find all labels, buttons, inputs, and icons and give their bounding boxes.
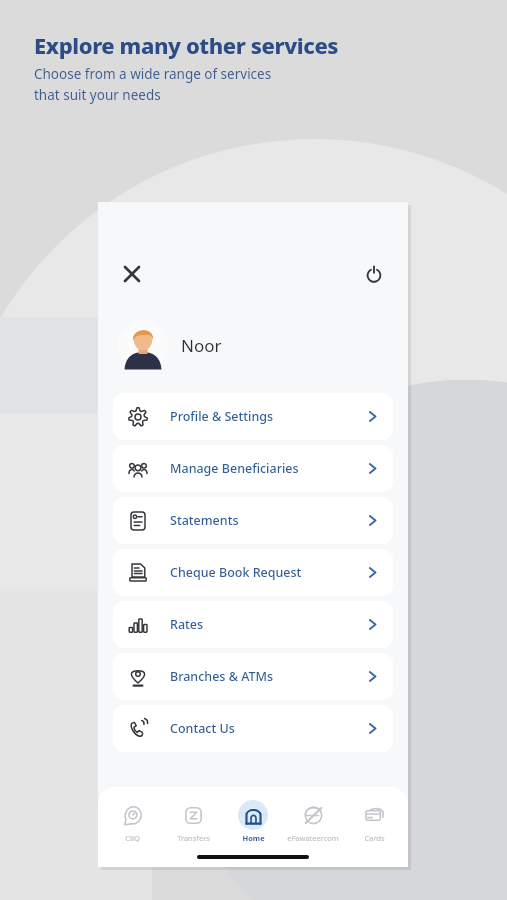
button[interactable]: eFawateercom [283, 798, 343, 845]
staticText: Choose from a wide range of services [34, 65, 272, 83]
button[interactable]: Cheque Book Request [113, 549, 393, 596]
button[interactable]: Branches & ATMs [113, 653, 393, 700]
staticText: Explore many other services [34, 30, 339, 60]
staticText: Manage Beneficiaries [170, 460, 299, 477]
staticText: CliQ [125, 833, 140, 843]
button[interactable]: Transfers [163, 798, 223, 845]
staticText: Noor [181, 334, 222, 357]
staticText: Branches & ATMs [170, 668, 274, 685]
button[interactable]: Noor [118, 320, 388, 370]
staticText: Transfers [177, 833, 210, 843]
staticText: Contact Us [170, 720, 235, 737]
button[interactable]: Manage Beneficiaries [113, 445, 393, 492]
button[interactable]: Statements [113, 497, 393, 544]
button[interactable]: Close [118, 260, 146, 288]
button[interactable]: Cards [344, 798, 404, 845]
staticText: Cheque Book Request [170, 564, 302, 581]
button[interactable]: CliQ [102, 798, 162, 845]
button[interactable]: Home [223, 798, 283, 845]
staticText: eFawateercom [287, 833, 339, 843]
staticText: Cards [364, 833, 385, 843]
staticText: Rates [170, 616, 204, 633]
button[interactable]: Profile & Settings [113, 393, 393, 440]
staticText: Home [242, 833, 265, 843]
button[interactable]: Log out [360, 260, 388, 288]
staticText: Profile & Settings [170, 408, 274, 425]
button[interactable]: Contact Us [113, 705, 393, 752]
button[interactable]: Rates [113, 601, 393, 648]
staticText: that suit your needs [34, 86, 161, 104]
staticText: Statements [170, 512, 239, 529]
